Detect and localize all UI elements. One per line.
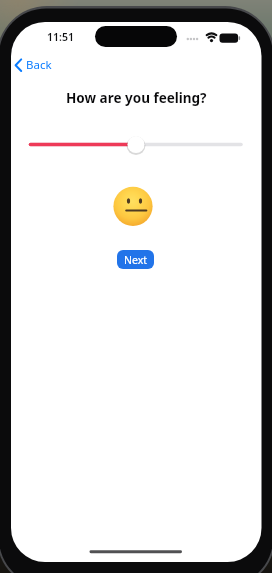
button[interactable]: [26, 133, 246, 156]
button[interactable]: Back: [12, 56, 52, 74]
staticText: Back: [26, 57, 52, 73]
staticText: 11:51: [47, 30, 74, 44]
staticText: Next: [124, 253, 148, 267]
button[interactable]: Next: [117, 250, 154, 269]
staticText: How are you feeling?: [66, 89, 207, 107]
